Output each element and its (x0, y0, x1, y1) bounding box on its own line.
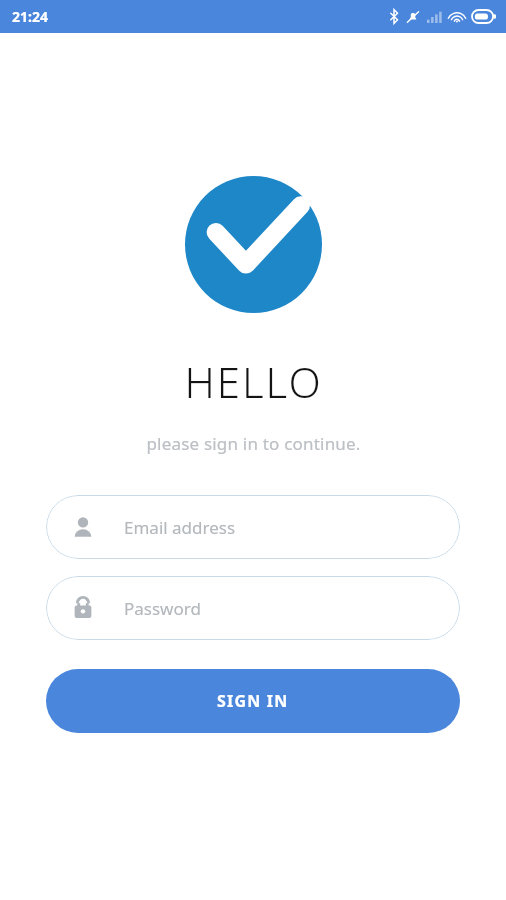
button[interactable]: Email address (46, 495, 460, 559)
button[interactable]: Password (46, 576, 460, 640)
staticText: SIGN IN (217, 690, 289, 712)
staticText: 21:24 (12, 7, 48, 26)
staticText: Password (124, 597, 201, 620)
staticText: HELLO (184, 353, 323, 410)
staticText: please sign in to continue. (146, 432, 361, 455)
button[interactable]: SIGN IN (46, 669, 460, 733)
staticText: Email address (124, 516, 236, 539)
